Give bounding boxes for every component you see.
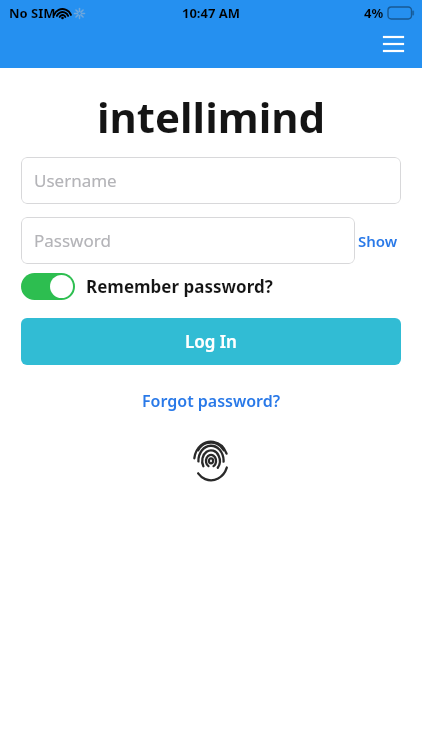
button[interactable]: Show [355, 217, 401, 264]
button[interactable]: Remember password? [21, 273, 273, 300]
staticText: intellimind [0, 88, 422, 145]
staticText: Forgot password? [142, 390, 281, 412]
staticText: 10:47 AM [182, 4, 241, 22]
staticText: Log In [185, 330, 237, 353]
staticText: Remember password? [86, 275, 273, 298]
button[interactable]: Forgot password? [132, 387, 291, 415]
staticText: Password [34, 229, 111, 252]
button[interactable]: Log In [21, 318, 401, 365]
button[interactable]: Password [21, 217, 355, 264]
button[interactable]: Username [21, 157, 401, 204]
staticText: No SIM [9, 4, 56, 22]
button[interactable]: Sign in with fingerprint [185, 434, 237, 486]
staticText: Show [358, 231, 398, 251]
staticText: Username [34, 169, 117, 192]
button[interactable]: Menu [376, 27, 410, 61]
staticText: 4% [364, 4, 384, 22]
